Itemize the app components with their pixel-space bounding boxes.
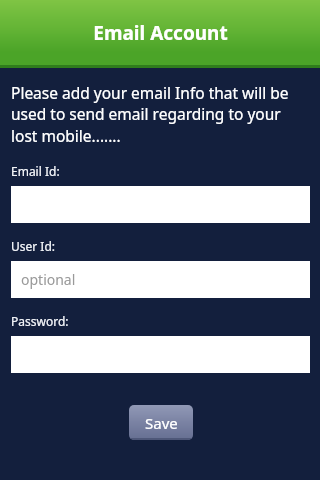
button[interactable]: Save — [129, 405, 193, 440]
staticText: Save — [145, 413, 178, 433]
staticText: Email Account — [93, 20, 228, 46]
button[interactable]: optional — [11, 261, 310, 298]
staticText: optional — [21, 270, 76, 289]
staticText: User Id: — [11, 238, 56, 254]
staticText: Please add your email Info that will be … — [11, 82, 310, 147]
staticText: Password: — [11, 313, 69, 329]
staticText: Email Id: — [11, 163, 60, 179]
